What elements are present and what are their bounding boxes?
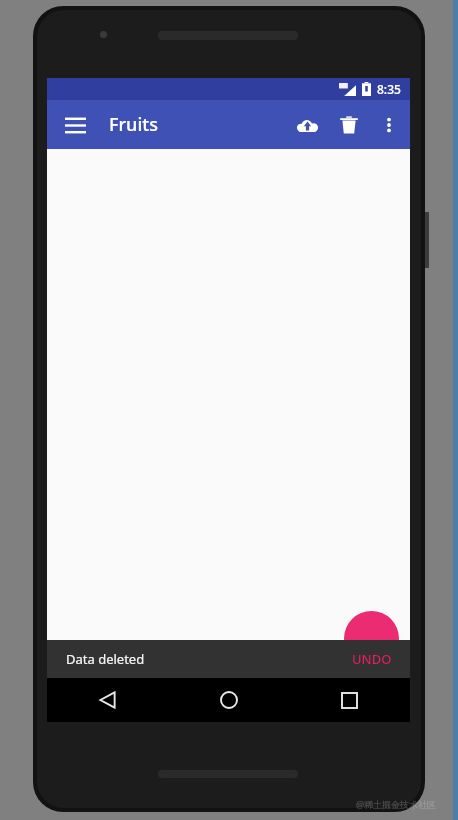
button[interactable]: Recent apps	[289, 678, 410, 722]
button[interactable]: Back	[47, 678, 168, 722]
button[interactable]: Home	[168, 678, 289, 722]
button[interactable]: Delete	[328, 104, 370, 146]
button[interactable]: UNDO	[334, 643, 410, 675]
button[interactable]: Open navigation drawer	[53, 103, 97, 147]
staticText: 8:35	[377, 81, 401, 97]
button[interactable]: More options	[370, 106, 408, 144]
button[interactable]: Upload	[286, 104, 328, 146]
staticText: Fruits	[109, 112, 158, 137]
button[interactable]: Add	[344, 611, 399, 666]
staticText: UNDO	[352, 650, 392, 668]
staticText: @稀土掘金技术社区	[355, 798, 436, 810]
staticText: Data deleted	[66, 650, 145, 668]
